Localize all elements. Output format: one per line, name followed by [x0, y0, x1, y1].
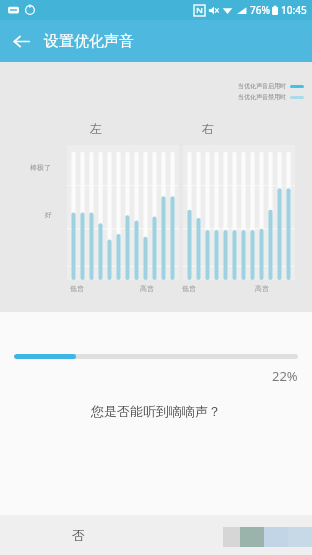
staticText: 棒极了: [30, 163, 51, 172]
staticText: 低音: [182, 284, 196, 293]
staticText: 当优化声音启用时: [238, 82, 286, 90]
staticText: 76%: [250, 3, 270, 17]
staticText: 左: [90, 121, 102, 136]
staticText: 设置优化声音: [44, 32, 134, 51]
staticText: 当优化声音禁用时: [238, 93, 286, 101]
staticText: 右: [202, 121, 214, 136]
staticText: 好: [45, 210, 52, 219]
staticText: 22%: [272, 367, 298, 385]
staticText: 低音: [70, 284, 84, 293]
staticText: 高音: [255, 284, 269, 293]
button[interactable]: 否: [0, 515, 156, 555]
button[interactable]: Back: [0, 20, 42, 62]
staticText: 您是否能听到嘀嘀声？: [91, 403, 221, 419]
staticText: 10:45: [281, 3, 307, 17]
staticText: 高音: [140, 284, 154, 293]
staticText: 否: [72, 527, 85, 543]
